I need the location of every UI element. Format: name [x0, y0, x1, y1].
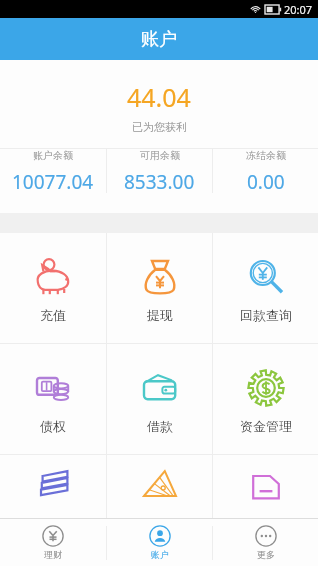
staticText: 理财: [44, 549, 62, 560]
staticText: 20:07: [284, 2, 313, 17]
button[interactable]: Menu item: [107, 455, 212, 518]
staticText: 回款查询: [240, 307, 292, 323]
staticText: 资金管理: [240, 418, 292, 434]
button[interactable]: 理财: [0, 519, 106, 566]
button[interactable]: 资金管理: [213, 344, 318, 454]
button[interactable]: 账户余额: [0, 149, 106, 195]
staticText: 债权: [40, 418, 66, 434]
button[interactable]: 更多: [213, 519, 318, 566]
staticText: 8533.00: [124, 169, 195, 195]
button[interactable]: Menu item: [0, 455, 106, 518]
staticText: 充值: [40, 307, 66, 323]
button[interactable]: 冻结余额: [213, 149, 318, 195]
staticText: 提现: [147, 307, 173, 323]
button[interactable]: 可用余额: [107, 149, 212, 195]
staticText: 0.00: [247, 169, 285, 195]
button[interactable]: 债权: [0, 344, 106, 454]
staticText: 账户: [151, 549, 169, 560]
staticText: 更多: [257, 549, 275, 560]
staticText: 账户余额: [33, 149, 73, 162]
staticText: 可用余额: [140, 149, 180, 162]
staticText: 借款: [147, 418, 173, 434]
staticText: 账户: [141, 28, 177, 51]
button[interactable]: 借款: [107, 344, 212, 454]
button[interactable]: Menu item: [213, 455, 318, 518]
staticText: 已为您获利: [132, 120, 187, 134]
button[interactable]: 账户: [107, 519, 212, 566]
staticText: 冻结余额: [246, 149, 286, 162]
staticText: 10077.04: [12, 169, 94, 195]
button[interactable]: 提现: [107, 233, 212, 343]
staticText: 44.04: [127, 80, 191, 114]
button[interactable]: 充值: [0, 233, 106, 343]
button[interactable]: 回款查询: [213, 233, 318, 343]
